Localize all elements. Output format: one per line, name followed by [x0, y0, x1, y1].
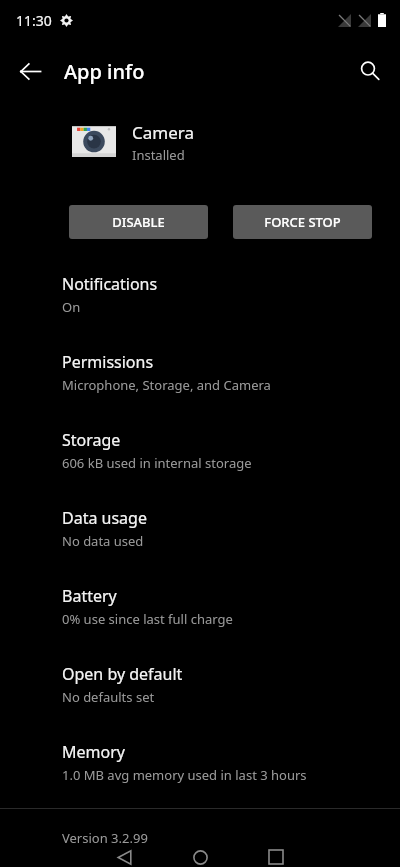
staticText: 0% use since last full charge: [62, 610, 233, 628]
staticText: Battery: [62, 585, 117, 607]
button[interactable]: Back: [86, 847, 162, 867]
button[interactable]: Back: [8, 49, 52, 93]
button[interactable]: FORCE STOP: [233, 205, 372, 239]
staticText: Memory: [62, 741, 125, 763]
staticText: Microphone, Storage, and Camera: [62, 376, 271, 394]
staticText: Storage: [62, 429, 121, 451]
button[interactable]: Memory: [0, 730, 400, 795]
button[interactable]: Storage: [0, 418, 400, 483]
staticText: Open by default: [62, 663, 183, 685]
button[interactable]: DISABLE: [69, 205, 208, 239]
staticText: Version 3.2.99: [62, 829, 148, 847]
staticText: Data usage: [62, 507, 147, 529]
button[interactable]: Data usage: [0, 496, 400, 561]
button[interactable]: Battery: [0, 574, 400, 639]
button[interactable]: Recent apps: [238, 847, 314, 867]
staticText: App info: [64, 58, 145, 85]
staticText: Permissions: [62, 351, 154, 373]
button[interactable]: Search: [348, 49, 392, 93]
button[interactable]: Open by default: [0, 652, 400, 717]
staticText: 606 kB used in internal storage: [62, 454, 252, 472]
button[interactable]: Notifications: [0, 262, 400, 327]
button[interactable]: Home: [162, 847, 238, 867]
staticText: FORCE STOP: [264, 213, 341, 231]
staticText: Camera: [132, 121, 194, 144]
staticText: Installed: [132, 146, 185, 164]
staticText: 11:30: [16, 11, 52, 30]
button[interactable]: Camera: [72, 120, 400, 164]
staticText: 1.0 MB avg memory used in last 3 hours: [62, 766, 307, 784]
staticText: DISABLE: [112, 213, 165, 231]
staticText: No defaults set: [62, 688, 155, 706]
staticText: No data used: [62, 532, 144, 550]
staticText: Notifications: [62, 273, 158, 295]
staticText: On: [62, 298, 81, 316]
button[interactable]: Permissions: [0, 340, 400, 405]
